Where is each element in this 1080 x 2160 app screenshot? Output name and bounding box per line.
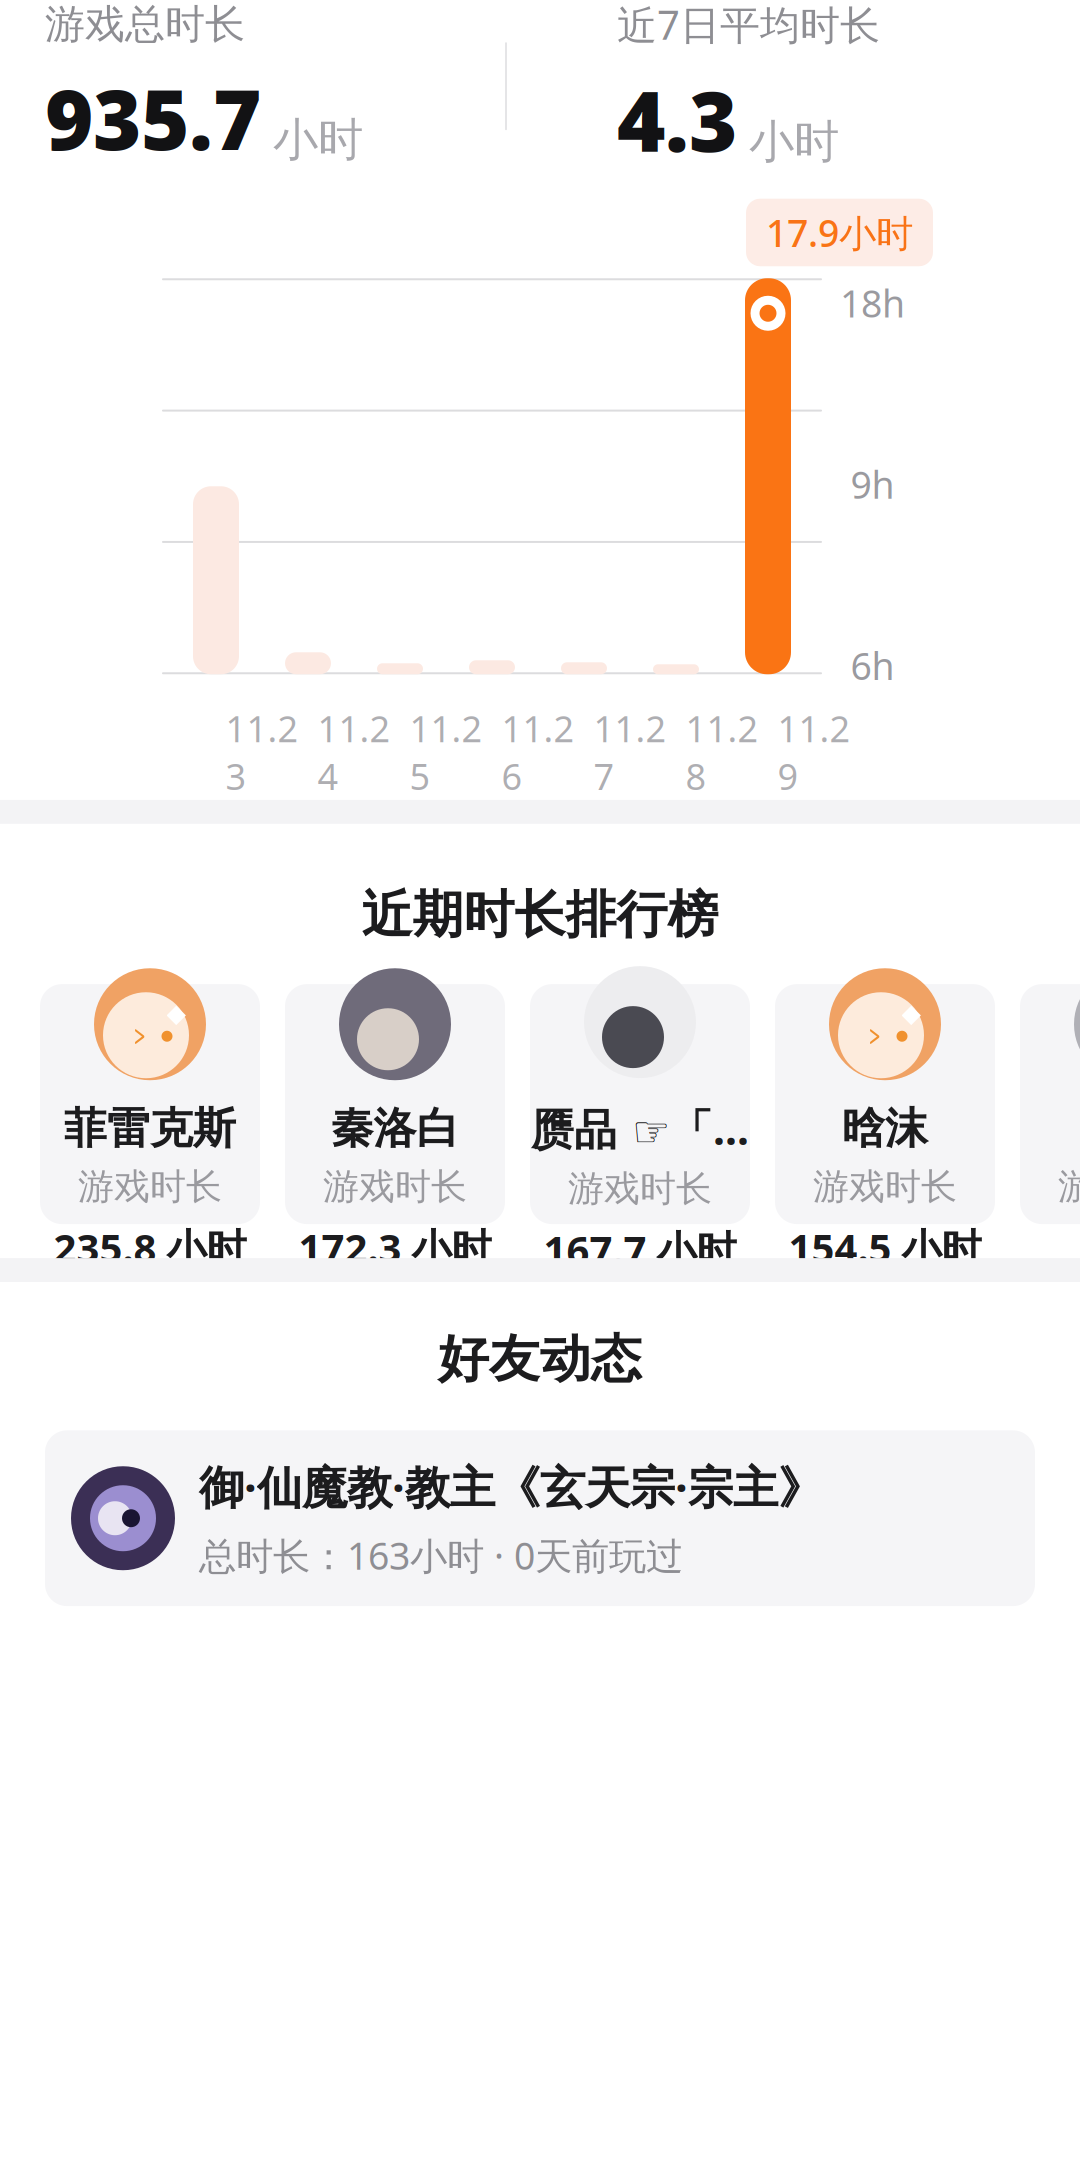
staticText: ﹥	[127, 1021, 152, 1052]
button[interactable]: ﹥	[775, 984, 995, 1224]
button[interactable]: 赝品 ☞「...	[530, 984, 750, 1224]
staticText: ◆	[166, 999, 185, 1028]
staticText: 11.29	[777, 704, 850, 800]
staticText: 游戏时长	[568, 1167, 712, 1211]
staticText: 9h	[850, 459, 894, 509]
staticText: 近7日平均时长	[617, 0, 880, 51]
staticText: 秦洛白	[330, 1102, 459, 1155]
staticText: 172.3 小时	[298, 1221, 491, 1274]
staticText: 游戏总时长	[45, 0, 245, 49]
staticText: 赝品 ☞「...	[531, 1100, 749, 1157]
staticText: 游戏时长	[1058, 1165, 1080, 1209]
button[interactable]: 逍	[1020, 984, 1080, 1224]
staticText: 4.3	[617, 65, 737, 175]
staticText: 小时	[749, 114, 839, 170]
staticText: 11.28	[685, 704, 758, 800]
staticText: 6h	[850, 641, 894, 690]
staticText: 154.5 小时	[788, 1221, 981, 1274]
staticText: 17.9小时	[766, 208, 913, 257]
staticText: 11.24	[317, 704, 390, 800]
staticText: 总时长：163小时 · 0天前玩过	[199, 1530, 683, 1580]
staticText: 18h	[840, 278, 905, 328]
staticText: 游戏时长	[813, 1165, 957, 1209]
staticText: 11.27	[593, 704, 666, 800]
staticText: 游戏时长	[323, 1165, 467, 1209]
button[interactable]: ﹥	[40, 984, 260, 1224]
staticText: 御·仙魔教·教主《玄天宗·宗主》	[199, 1456, 823, 1516]
staticText: 235.8 小时	[53, 1221, 246, 1274]
staticText: 菲雷克斯	[64, 1102, 236, 1155]
staticText: 近期时长排行榜	[361, 884, 718, 946]
staticText: 11.23	[225, 704, 298, 800]
staticText: 11.26	[501, 704, 574, 800]
staticText: 935.7	[45, 63, 261, 173]
staticText: 小时	[273, 112, 363, 168]
staticText: ﹥	[862, 1021, 887, 1052]
staticText: 好友动态	[438, 1328, 642, 1390]
button[interactable]: 御·仙魔教·教主《玄天宗·宗主》	[45, 1430, 1035, 1606]
button[interactable]: 秦洛白	[285, 984, 505, 1224]
staticText: 167.7 小时	[543, 1223, 736, 1276]
staticText: 晗沫	[842, 1102, 928, 1155]
staticText: 游戏时长	[78, 1165, 222, 1209]
staticText: ◆	[901, 999, 920, 1028]
staticText: 11.25	[409, 704, 482, 800]
